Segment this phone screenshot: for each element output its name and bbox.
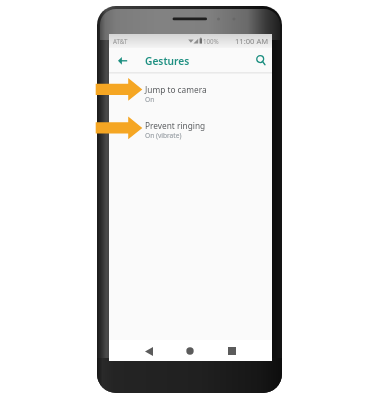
button[interactable]: Back (139, 341, 159, 361)
staticText: 11:00 AM (235, 36, 269, 46)
staticText: 100% (203, 37, 219, 45)
staticText: On (vibrate) (145, 131, 182, 140)
button[interactable]: Recent apps (222, 341, 242, 361)
button[interactable]: Jump to camera (109, 77, 272, 113)
button[interactable]: Back (113, 48, 135, 74)
button[interactable]: Search (250, 48, 272, 74)
staticText: AT&T (113, 37, 128, 45)
staticText: Gestures (145, 54, 190, 68)
button[interactable]: Home (180, 341, 200, 361)
button[interactable]: Prevent ringing (109, 113, 272, 149)
staticText: Jump to camera (145, 84, 207, 95)
staticText: On (145, 95, 155, 104)
staticText: Prevent ringing (145, 120, 206, 131)
